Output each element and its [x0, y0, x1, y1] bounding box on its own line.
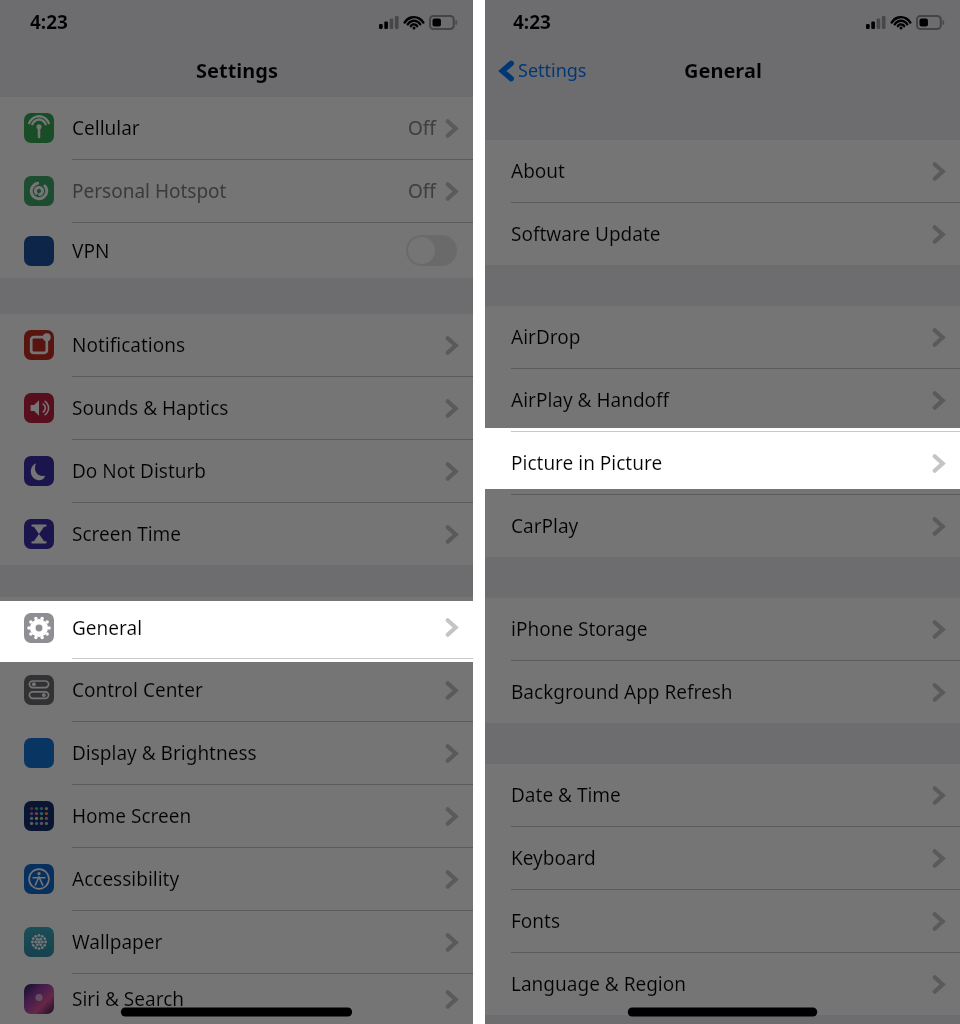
staticText: Wallpaper: [72, 929, 446, 955]
staticText: Keyboard: [511, 845, 933, 871]
staticText: Display & Brightness: [72, 740, 446, 766]
button[interactable]: Personal Hotspot: [0, 160, 473, 222]
button[interactable]: Language & Region: [485, 953, 960, 1015]
staticText: 4:23: [513, 9, 551, 35]
staticText: Screen Time: [72, 521, 446, 547]
staticText: Language & Region: [511, 971, 933, 997]
staticText: Settings: [196, 57, 278, 84]
button[interactable]: AirPlay & Handoff: [485, 369, 960, 431]
staticText: Siri & Search: [72, 986, 446, 1012]
button[interactable]: Keyboard: [485, 827, 960, 889]
staticText: Software Update: [511, 221, 933, 247]
button[interactable]: Display & Brightness: [0, 722, 473, 784]
button[interactable]: Settings: [501, 58, 587, 83]
button[interactable]: iPhone Storage: [485, 598, 960, 660]
button[interactable]: Sounds & Haptics: [0, 377, 473, 439]
staticText: Accessibility: [72, 866, 446, 892]
staticText: Sounds & Haptics: [72, 395, 446, 421]
staticText: iPhone Storage: [511, 616, 933, 642]
staticText: VPN: [72, 238, 406, 264]
button[interactable]: Notifications: [0, 314, 473, 376]
button[interactable]: Fonts: [485, 890, 960, 952]
button[interactable]: About: [485, 140, 960, 202]
button[interactable]: VPN: [0, 223, 473, 278]
staticText: Background App Refresh: [511, 679, 933, 705]
button[interactable]: CarPlay: [485, 495, 960, 557]
staticText: General: [72, 615, 446, 641]
button[interactable]: Software Update: [485, 203, 960, 265]
staticText: About: [511, 158, 933, 184]
button[interactable]: General: [0, 597, 473, 658]
button[interactable]: Cellular: [0, 97, 473, 159]
button[interactable]: AirDrop: [485, 306, 960, 368]
button[interactable]: Picture in Picture: [485, 432, 960, 494]
staticText: General: [684, 57, 762, 84]
button[interactable]: VPN toggle, off: [406, 235, 457, 266]
button[interactable]: Accessibility: [0, 848, 473, 910]
staticText: 4:23: [30, 9, 68, 35]
staticText: Date & Time: [511, 782, 933, 808]
staticText: Home Screen: [72, 803, 446, 829]
button[interactable]: Home Screen: [0, 785, 473, 847]
staticText: AirDrop: [511, 324, 933, 350]
button[interactable]: Siri & Search: [0, 974, 473, 1024]
staticText: Settings: [518, 58, 587, 83]
staticText: Off: [408, 178, 436, 204]
button[interactable]: Screen Time: [0, 503, 473, 565]
button[interactable]: Wallpaper: [0, 911, 473, 973]
staticText: Fonts: [511, 908, 933, 934]
button[interactable]: Control Center: [0, 659, 473, 721]
staticText: Off: [408, 115, 436, 141]
staticText: Notifications: [72, 332, 446, 358]
staticText: Cellular: [72, 115, 408, 141]
staticText: CarPlay: [511, 513, 933, 539]
staticText: Do Not Disturb: [72, 458, 446, 484]
staticText: Picture in Picture: [511, 450, 933, 476]
staticText: Personal Hotspot: [72, 178, 408, 204]
button[interactable]: Background App Refresh: [485, 661, 960, 723]
button[interactable]: Do Not Disturb: [0, 440, 473, 502]
staticText: Control Center: [72, 677, 446, 703]
button[interactable]: Date & Time: [485, 764, 960, 826]
staticText: AirPlay & Handoff: [511, 387, 933, 413]
